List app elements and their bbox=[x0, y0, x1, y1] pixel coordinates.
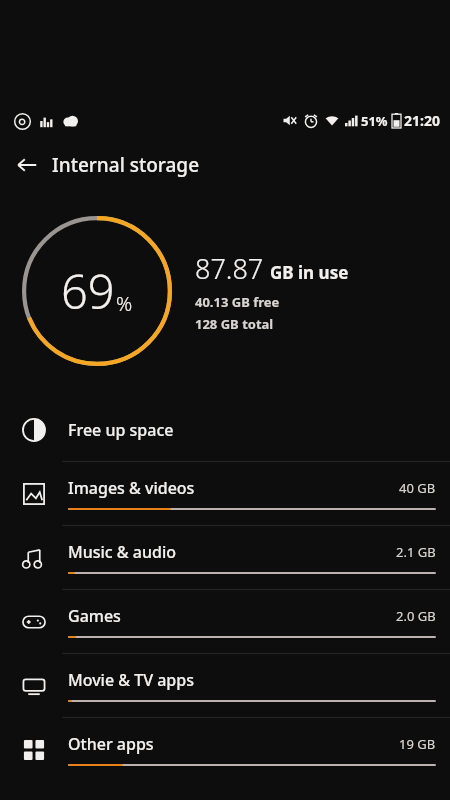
other: Images and videos bbox=[22, 482, 46, 506]
other: Music and audio bbox=[22, 546, 46, 570]
other: Movie and TV apps bbox=[22, 674, 46, 698]
staticText: 87.87 bbox=[195, 250, 264, 287]
button[interactable]: Other apps bbox=[0, 718, 450, 781]
staticText: 2.1 GB bbox=[396, 543, 436, 561]
button[interactable]: Games bbox=[0, 590, 450, 653]
button[interactable]: Free up space bbox=[0, 398, 450, 461]
button[interactable]: Images and videos bbox=[0, 462, 450, 525]
staticText: Internal storage bbox=[52, 152, 200, 178]
staticText: Movie & TV apps bbox=[68, 669, 194, 691]
other: Other apps bbox=[22, 738, 46, 762]
staticText: 69 bbox=[61, 259, 115, 323]
staticText: Images & videos bbox=[68, 477, 195, 499]
staticText: GB in use bbox=[270, 261, 349, 284]
staticText: 2.0 GB bbox=[396, 607, 436, 625]
staticText: Music & audio bbox=[68, 541, 176, 563]
button[interactable]: Back bbox=[10, 148, 44, 182]
other: Games bbox=[22, 610, 46, 634]
button[interactable]: Movie and TV apps bbox=[0, 654, 450, 717]
other: Free up space bbox=[22, 418, 46, 442]
button[interactable]: Music and audio bbox=[0, 526, 450, 589]
staticText: 51% bbox=[361, 112, 388, 130]
staticText: Games bbox=[68, 605, 121, 627]
staticText: % bbox=[116, 290, 133, 317]
staticText: 19 GB bbox=[399, 735, 436, 753]
staticText: Free up space bbox=[68, 419, 174, 441]
staticText: 21:20 bbox=[404, 111, 440, 130]
staticText: 40.13 GB free bbox=[195, 293, 280, 311]
staticText: 128 GB total bbox=[195, 315, 274, 333]
staticText: Other apps bbox=[68, 733, 154, 755]
staticText: 40 GB bbox=[399, 479, 436, 497]
